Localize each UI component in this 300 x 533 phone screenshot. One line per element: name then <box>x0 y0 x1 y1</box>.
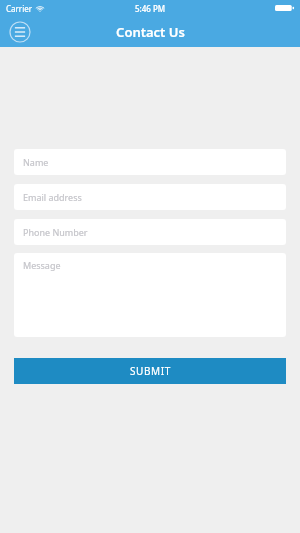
button[interactable]: Phone Number <box>14 219 286 245</box>
button[interactable]: Email address <box>14 184 286 210</box>
staticText: SUBMIT <box>130 364 171 378</box>
staticText: Email address <box>23 191 82 203</box>
staticText: 5:46 PM <box>135 3 166 14</box>
staticText: Carrier <box>6 3 33 14</box>
button[interactable]: Menu <box>9 21 31 43</box>
staticText: Message <box>23 259 61 271</box>
staticText: Contact Us <box>116 23 185 41</box>
button[interactable]: SUBMIT <box>14 358 286 384</box>
staticText: Name <box>23 156 49 168</box>
button[interactable]: Message <box>14 253 286 337</box>
staticText: Phone Number <box>23 226 88 238</box>
button[interactable]: Name <box>14 149 286 175</box>
